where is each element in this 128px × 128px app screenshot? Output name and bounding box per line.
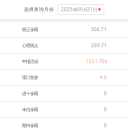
staticText: 0 [104,106,107,112]
staticText: 进十金额 [22,91,38,96]
staticText: 期待金额 [22,123,38,128]
staticText: ▼ [98,7,101,12]
staticText: 209.71 [91,42,107,48]
button[interactable]: 进十金额 [0,86,128,102]
staticText: 306.71 [91,26,107,32]
staticText: 0 [104,90,107,96]
staticText: 2025年09月21日 [61,6,97,12]
button[interactable]: 校正金额 [0,22,128,38]
staticText: 心理线止 [22,43,38,48]
staticText: 4.6 [100,74,107,80]
button[interactable]: 2025年09月21日 [58,4,104,14]
staticText: 理订发参 [22,75,38,80]
staticText: 申报活动 [22,59,38,64]
staticText: 1021.70k [86,58,107,64]
button[interactable]: 未信金额 [0,102,128,118]
staticText: 未信金额 [22,107,38,112]
button[interactable]: 心理线止 [0,38,128,54]
staticText: 0 [104,122,107,128]
button[interactable]: 申报活动 [0,54,128,70]
staticText: 校正金额 [22,27,38,32]
button[interactable]: 期待金额 [0,118,128,128]
staticText: 选择查询月份 [24,7,54,12]
button[interactable]: 理订发参 [0,70,128,86]
